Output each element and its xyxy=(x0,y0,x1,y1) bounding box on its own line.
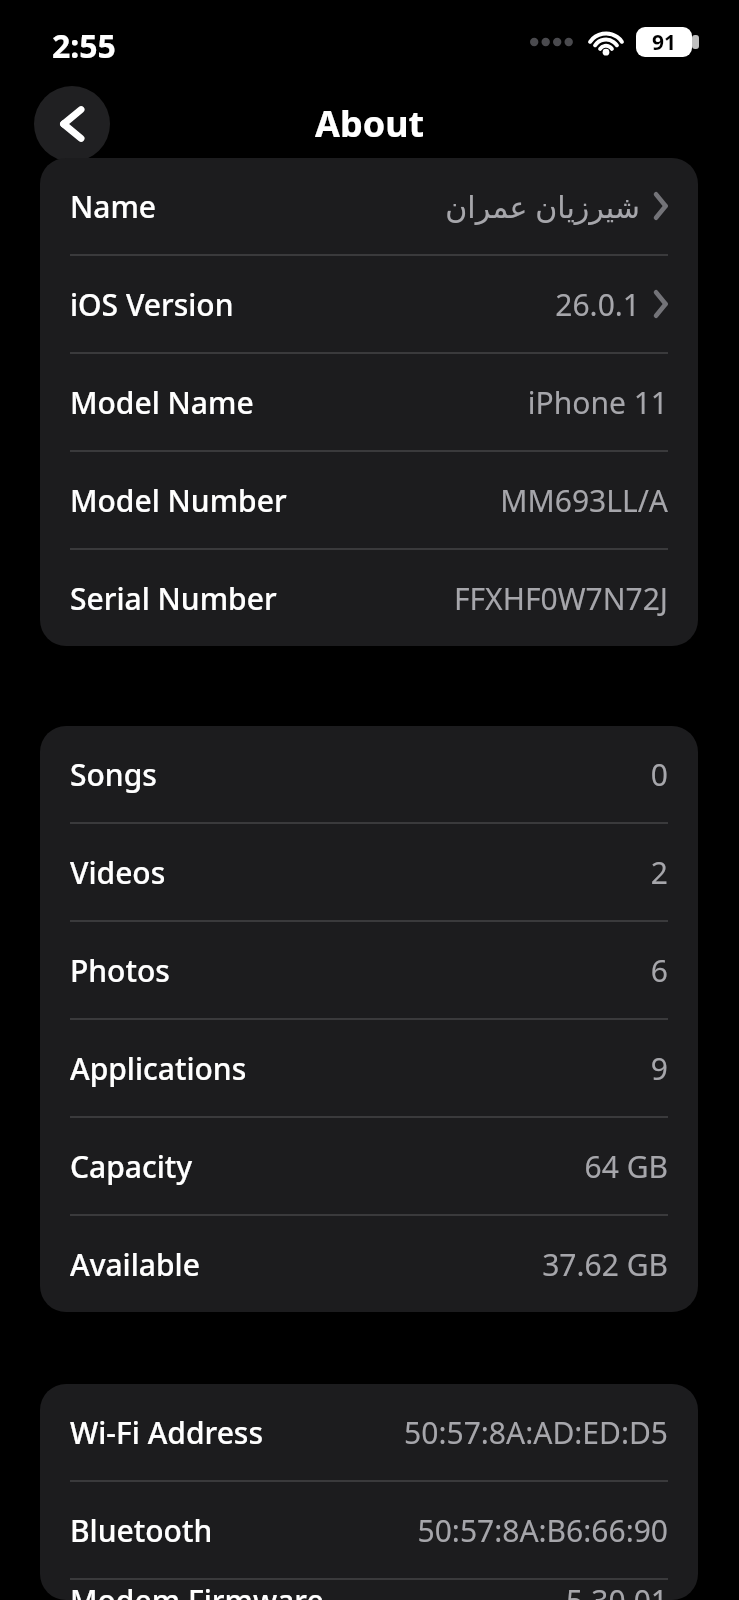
button[interactable]: Name xyxy=(40,158,698,254)
staticText: Serial Number xyxy=(70,578,277,619)
staticText: Videos xyxy=(70,852,166,893)
staticText: 26.0.1 xyxy=(555,284,640,325)
staticText: 2 xyxy=(650,852,668,893)
button[interactable]: Bluetooth xyxy=(40,1482,698,1578)
staticText: Songs xyxy=(70,754,157,795)
button[interactable]: Photos xyxy=(40,922,698,1018)
staticText: iPhone 11 xyxy=(527,382,668,423)
staticText: Model Number xyxy=(70,480,287,521)
button[interactable]: Capacity xyxy=(40,1118,698,1214)
staticText: FFXHF0W7N72J xyxy=(453,578,668,619)
staticText: 6 xyxy=(650,950,668,991)
staticText: 64 GB xyxy=(584,1146,668,1187)
staticText: Photos xyxy=(70,950,170,991)
staticText: Modem Firmware xyxy=(70,1580,324,1600)
staticText: 91 xyxy=(652,28,677,57)
staticText: 50:57:8A:AD:ED:D5 xyxy=(404,1412,668,1453)
staticText: Available xyxy=(70,1244,200,1285)
staticText: iOS Version xyxy=(70,284,234,325)
button[interactable]: Model Number xyxy=(40,452,698,548)
button[interactable]: Modem Firmware xyxy=(40,1580,698,1600)
staticText: Model Name xyxy=(70,382,254,423)
button[interactable]: iOS Version xyxy=(40,256,698,352)
button[interactable]: Available xyxy=(40,1216,698,1312)
staticText: 5.30.01 xyxy=(566,1580,668,1600)
staticText: 2:55 xyxy=(52,24,116,68)
button[interactable]: Model Name xyxy=(40,354,698,450)
staticText: 50:57:8A:B6:66:90 xyxy=(417,1510,668,1551)
button[interactable]: Wi-Fi Address xyxy=(40,1384,698,1480)
staticText: Applications xyxy=(70,1048,247,1089)
button[interactable]: Videos xyxy=(40,824,698,920)
staticText: Bluetooth xyxy=(70,1510,213,1551)
staticText: شيرزيان عمران xyxy=(445,186,640,227)
staticText: Name xyxy=(70,186,157,227)
staticText: 0 xyxy=(650,754,668,795)
button[interactable]: Back xyxy=(34,86,110,162)
staticText: 9 xyxy=(650,1048,668,1089)
button[interactable]: Serial Number xyxy=(40,550,698,646)
staticText: 37.62 GB xyxy=(542,1244,668,1285)
button[interactable]: Songs xyxy=(40,726,698,822)
staticText: MM693LL/A xyxy=(500,480,668,521)
button[interactable]: Applications xyxy=(40,1020,698,1116)
staticText: Capacity xyxy=(70,1146,193,1187)
staticText: About xyxy=(315,99,425,148)
staticText: Wi-Fi Address xyxy=(70,1412,264,1453)
